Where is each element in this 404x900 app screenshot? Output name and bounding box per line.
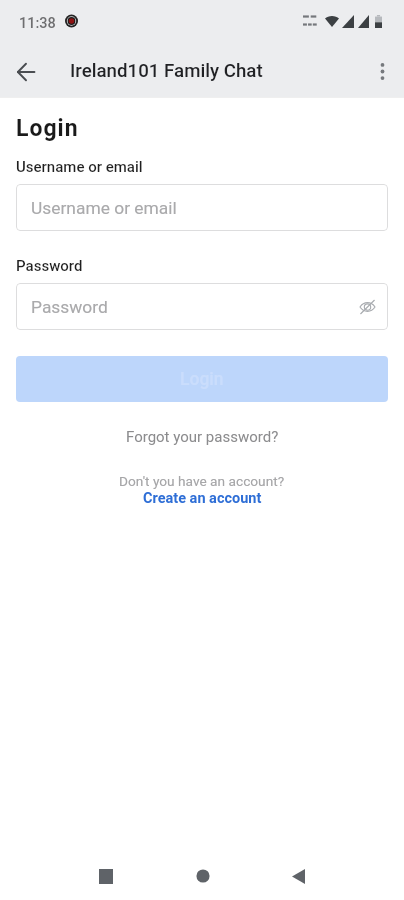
button[interactable]: Forgot your password?: [0, 422, 404, 452]
button[interactable]: Username or email: [16, 184, 388, 231]
staticText: Username or email: [16, 158, 143, 176]
staticText: Ireland101 Family Chat: [70, 60, 263, 82]
staticText: Don't you have an account?: [119, 473, 285, 489]
staticText: Login: [16, 115, 79, 142]
button[interactable]: Back: [6, 52, 46, 92]
button[interactable]: Home: [179, 852, 227, 900]
button[interactable]: Recents: [82, 852, 130, 900]
button[interactable]: Create an account: [139, 488, 266, 509]
button[interactable]: Password: [16, 283, 388, 330]
button[interactable]: More options: [362, 51, 402, 91]
staticText: Create an account: [143, 490, 262, 507]
staticText: Password: [16, 257, 83, 275]
button[interactable]: Show password: [356, 296, 378, 318]
staticText: Forgot your password?: [126, 428, 279, 446]
staticText: Login: [180, 369, 224, 390]
staticText: Username or email: [31, 198, 177, 218]
staticText: Password: [31, 297, 108, 317]
staticText: 11:38: [19, 15, 56, 32]
button[interactable]: Back: [274, 852, 322, 900]
